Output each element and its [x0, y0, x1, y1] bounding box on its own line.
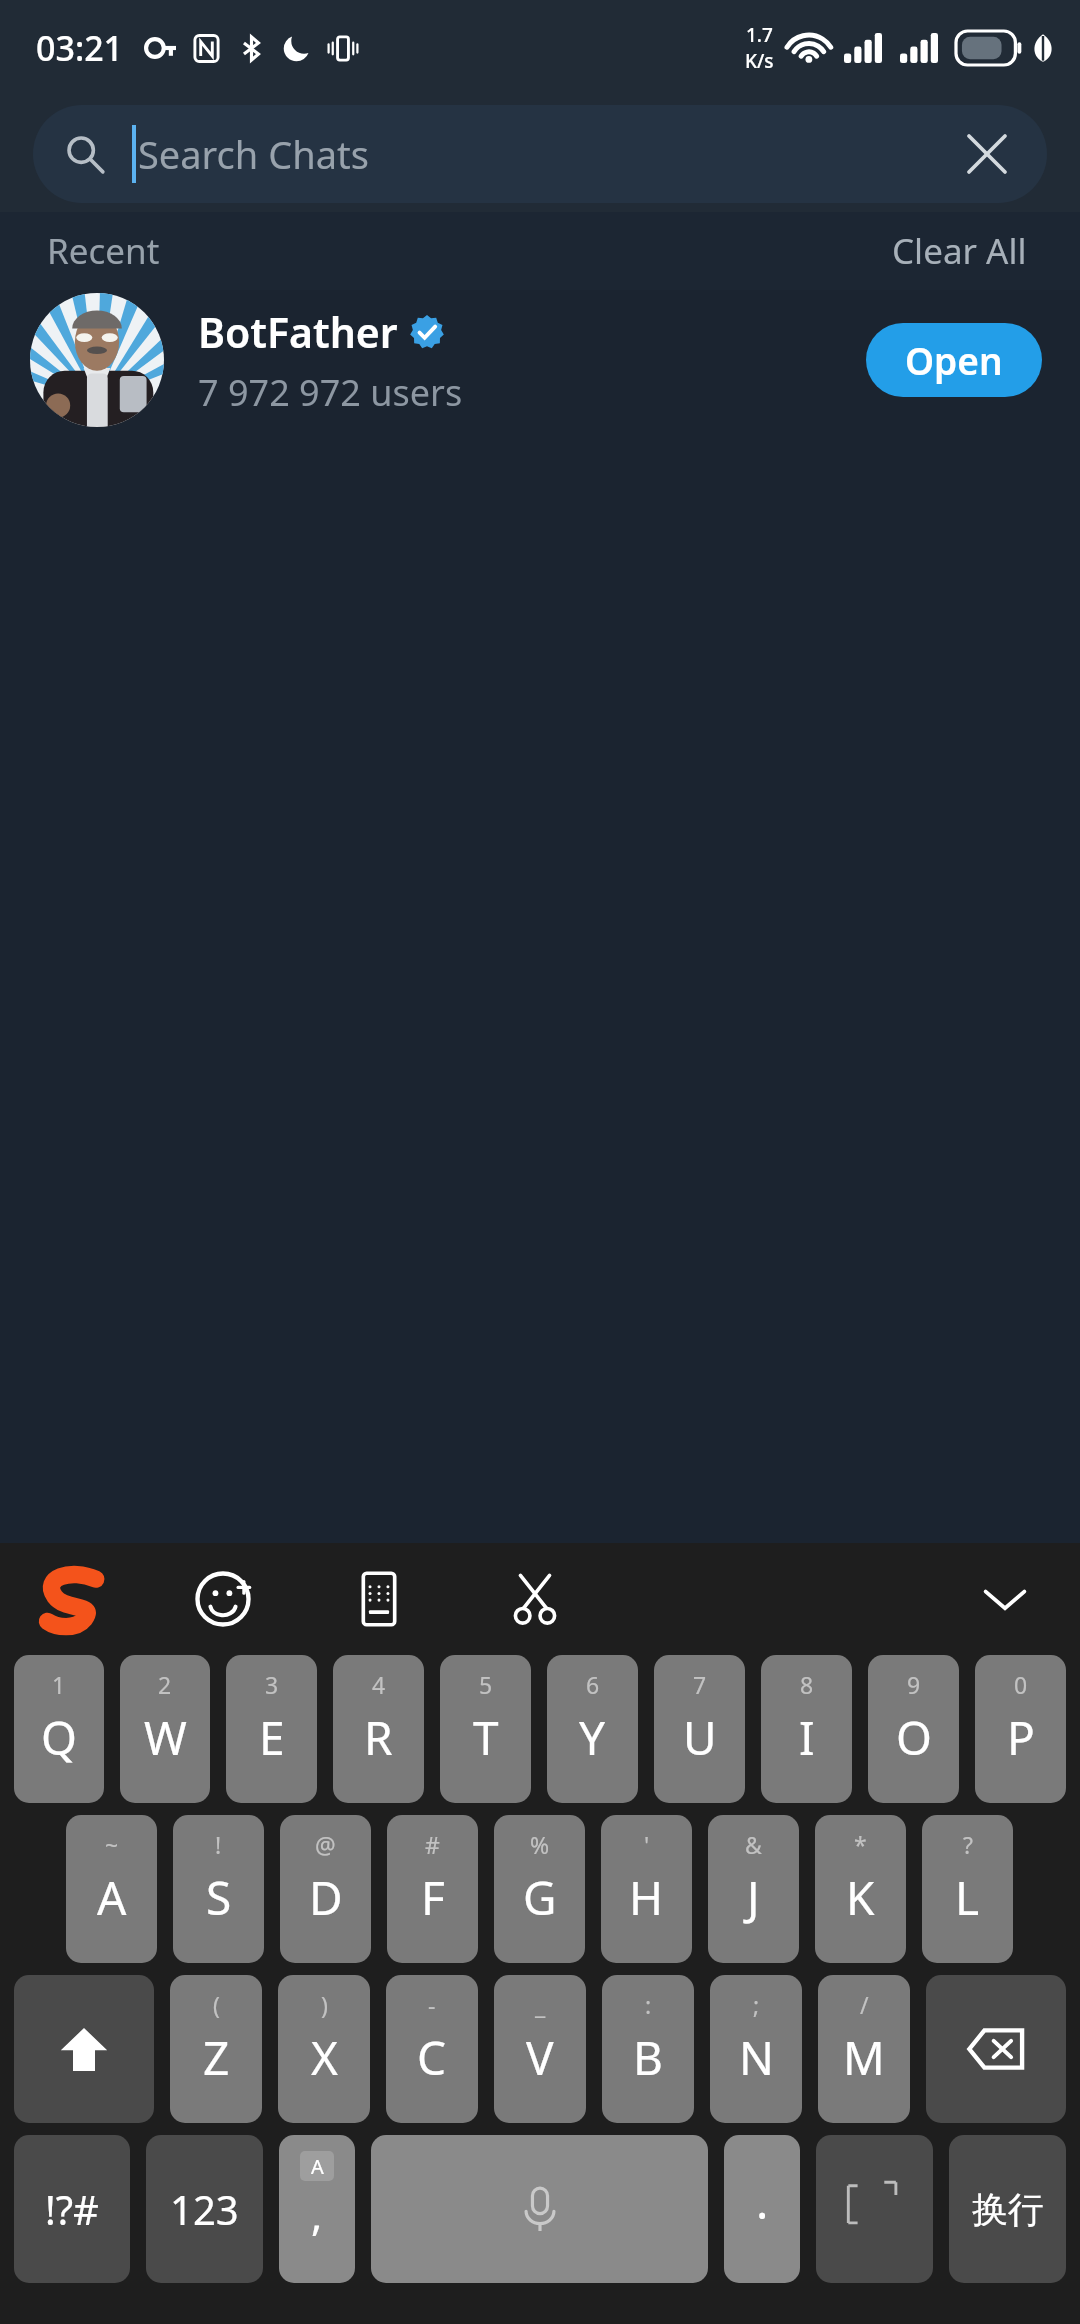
staticText: /	[860, 1989, 869, 2020]
staticText: '	[644, 1829, 650, 1860]
button[interactable]: !?#	[14, 2135, 130, 2283]
staticText: 03:21	[36, 25, 124, 71]
button[interactable]: A	[279, 2135, 355, 2283]
button[interactable]: Hide keyboard	[962, 1556, 1048, 1642]
button[interactable]: 8	[761, 1655, 852, 1803]
staticText: E	[259, 1706, 285, 1769]
staticText: P	[1007, 1706, 1035, 1769]
staticText: 5	[479, 1669, 493, 1700]
button[interactable]: ;	[710, 1975, 802, 2123]
button[interactable]: Keyboard layout	[336, 1556, 422, 1642]
staticText: I	[799, 1706, 815, 1769]
button[interactable]: Clear search	[937, 105, 1037, 203]
staticText: 7	[693, 1669, 707, 1700]
staticText: M	[843, 2026, 885, 2089]
button[interactable]: Clear All	[886, 221, 1033, 281]
staticText: A	[97, 1866, 127, 1929]
staticText: D	[309, 1866, 343, 1929]
staticText: 123	[170, 2182, 239, 2236]
staticText: Open	[905, 335, 1003, 385]
staticText: R	[364, 1706, 393, 1769]
button[interactable]: *	[815, 1815, 906, 1963]
staticText: ;	[753, 1989, 760, 2020]
staticText: A	[311, 2153, 324, 2180]
button[interactable]: Emoji	[180, 1556, 266, 1642]
button[interactable]: 5	[440, 1655, 531, 1803]
staticText: 7 972 972 users	[198, 368, 463, 417]
staticText: _	[535, 1989, 546, 2020]
staticText: ~	[105, 1829, 119, 1860]
staticText: )	[321, 1989, 328, 2020]
button[interactable]: ~	[66, 1815, 157, 1963]
staticText: U	[683, 1706, 717, 1769]
button[interactable]: 9	[868, 1655, 959, 1803]
button[interactable]: Search Chats	[33, 105, 1047, 203]
button[interactable]: Open	[866, 323, 1042, 397]
staticText: 6	[586, 1669, 600, 1700]
staticText: Recent	[47, 227, 160, 275]
staticText: ,	[311, 2186, 323, 2243]
button[interactable]: Backspace	[926, 1975, 1066, 2123]
button[interactable]: Voice input	[371, 2135, 708, 2283]
button[interactable]: 2	[120, 1655, 210, 1803]
staticText: N	[739, 2026, 774, 2089]
button[interactable]: 换行	[949, 2135, 1066, 2283]
button[interactable]: @	[280, 1815, 371, 1963]
button[interactable]: 123	[146, 2135, 263, 2283]
staticText: *	[854, 1829, 867, 1860]
button[interactable]: Shift	[14, 1975, 154, 2123]
button[interactable]: -	[386, 1975, 478, 2123]
staticText: K	[846, 1866, 875, 1929]
staticText: :	[645, 1989, 652, 2020]
staticText: T	[473, 1706, 499, 1769]
button[interactable]: 6	[547, 1655, 638, 1803]
staticText: 换行	[972, 2187, 1044, 2232]
staticText: K/s	[745, 48, 774, 74]
button[interactable]: 1	[14, 1655, 104, 1803]
button[interactable]: _	[494, 1975, 586, 2123]
button[interactable]: !	[173, 1815, 264, 1963]
button[interactable]: &	[708, 1815, 799, 1963]
staticText: H	[629, 1866, 664, 1929]
staticText: 0	[1014, 1669, 1028, 1700]
staticText: 1	[52, 1669, 66, 1700]
button[interactable]: '	[601, 1815, 692, 1963]
staticText: C	[417, 2026, 447, 2089]
staticText: @	[315, 1829, 336, 1860]
staticText: 2	[158, 1669, 172, 1700]
staticText: 9	[907, 1669, 921, 1700]
button[interactable]: /	[818, 1975, 910, 2123]
staticText: !?#	[45, 2182, 99, 2236]
button[interactable]: #	[387, 1815, 478, 1963]
button[interactable]: BotFather	[0, 290, 1080, 430]
staticText: O	[896, 1706, 932, 1769]
staticText: Q	[41, 1706, 77, 1769]
button[interactable]: 0	[975, 1655, 1066, 1803]
button[interactable]: (	[170, 1975, 262, 2123]
staticText: Z	[203, 2026, 230, 2089]
staticText: %	[530, 1829, 550, 1860]
button[interactable]: ?	[922, 1815, 1013, 1963]
button[interactable]: Switch language	[816, 2135, 933, 2283]
button[interactable]: Sogou input	[28, 1556, 114, 1642]
button[interactable]: .	[724, 2135, 800, 2283]
staticText: 3	[265, 1669, 279, 1700]
button[interactable]: 4	[333, 1655, 424, 1803]
button[interactable]: )	[278, 1975, 370, 2123]
button[interactable]: 7	[654, 1655, 745, 1803]
staticText: L	[955, 1866, 980, 1929]
staticText: Y	[579, 1706, 606, 1769]
button[interactable]: :	[602, 1975, 694, 2123]
staticText: !	[215, 1829, 222, 1860]
staticText: ?	[963, 1829, 973, 1860]
button[interactable]: %	[494, 1815, 585, 1963]
staticText: F	[421, 1866, 445, 1929]
staticText: B	[633, 2026, 663, 2089]
button[interactable]: 3	[226, 1655, 317, 1803]
staticText: V	[526, 2026, 554, 2089]
staticText: &	[745, 1829, 762, 1860]
staticText: 8	[800, 1669, 814, 1700]
staticText: 4	[372, 1669, 386, 1700]
button[interactable]: Clipboard	[492, 1556, 578, 1642]
staticText: Search Chats	[138, 128, 369, 180]
